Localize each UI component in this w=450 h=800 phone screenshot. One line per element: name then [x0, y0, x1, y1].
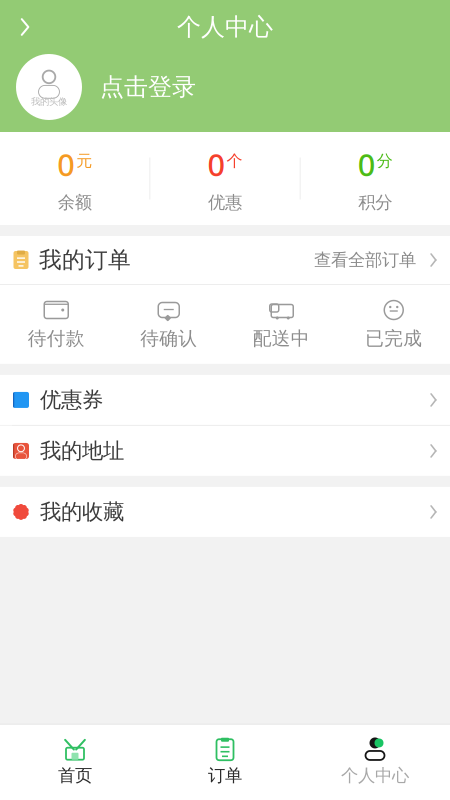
- staticText: 已完成: [365, 327, 422, 350]
- staticText: 待付款: [28, 327, 85, 350]
- button[interactable]: 已完成: [337, 295, 450, 354]
- staticText: 余额: [58, 192, 92, 213]
- staticText: 优惠: [208, 192, 242, 213]
- staticText: 元: [76, 151, 92, 171]
- button[interactable]: 我的头像: [0, 54, 450, 120]
- staticText: 个人中心: [177, 12, 273, 42]
- button[interactable]: 我的地址: [0, 426, 450, 476]
- staticText: 0: [57, 144, 75, 185]
- staticText: 积分: [358, 192, 392, 213]
- button[interactable]: 0: [150, 132, 300, 225]
- staticText: 我的地址: [40, 438, 124, 464]
- button[interactable]: 个人中心: [300, 731, 450, 792]
- staticText: 0: [207, 144, 225, 185]
- staticText: 我的头像: [31, 96, 67, 107]
- staticText: 分: [377, 151, 393, 171]
- staticText: 优惠券: [40, 387, 103, 413]
- button[interactable]: 首页: [0, 731, 150, 792]
- staticText: 点击登录: [100, 72, 196, 102]
- button[interactable]: 0: [301, 132, 450, 225]
- button[interactable]: 优惠券: [0, 375, 450, 425]
- button[interactable]: 配送中: [225, 295, 337, 354]
- button[interactable]: 返回: [8, 10, 42, 44]
- button[interactable]: 我的订单: [0, 236, 450, 284]
- staticText: 0: [358, 144, 376, 185]
- staticText: 首页: [58, 765, 92, 786]
- button[interactable]: 订单: [150, 731, 300, 792]
- staticText: 个人中心: [341, 765, 409, 786]
- button[interactable]: 待确认: [112, 295, 225, 354]
- button[interactable]: 我的收藏: [0, 487, 450, 537]
- staticText: 我的收藏: [40, 499, 124, 525]
- staticText: 我的订单: [39, 246, 131, 274]
- staticText: 配送中: [253, 327, 310, 350]
- staticText: 待确认: [140, 327, 197, 350]
- button[interactable]: 0: [0, 132, 149, 225]
- button[interactable]: 待付款: [0, 295, 112, 354]
- staticText: 订单: [208, 765, 242, 786]
- staticText: 查看全部订单: [314, 249, 416, 271]
- staticText: 个: [226, 151, 242, 171]
